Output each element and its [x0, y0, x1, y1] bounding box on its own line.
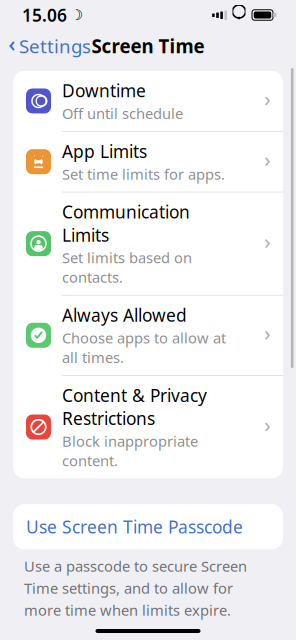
staticText: Set time limits for apps. — [62, 164, 225, 184]
button[interactable]: Settings — [0, 28, 99, 64]
button[interactable]: Content & Privacy Restrictions — [13, 376, 283, 478]
staticText: Block inappropriate content. — [62, 431, 198, 470]
button[interactable]: Downtime — [13, 71, 283, 132]
button[interactable]: Communication Limits — [13, 192, 283, 296]
staticText: Off until schedule — [62, 103, 183, 123]
staticText: Content & Privacy Restrictions — [62, 384, 207, 430]
button[interactable]: App Limits — [13, 132, 283, 192]
staticText: Settings — [19, 34, 91, 58]
staticText: ☽ — [70, 7, 83, 23]
button[interactable]: Always Allowed — [13, 296, 283, 376]
staticText: Always Allowed — [62, 304, 187, 327]
button[interactable]: Use Screen Time Passcode — [13, 504, 283, 549]
staticText: Screen Time — [91, 34, 204, 58]
staticText: App Limits — [62, 140, 147, 163]
staticText: Communication Limits — [62, 200, 190, 246]
staticText: Use a passcode to secure Screen Time set… — [24, 556, 247, 620]
staticText: 15.06 — [22, 3, 67, 26]
staticText: Set limits based on contacts. — [62, 248, 192, 287]
staticText: Downtime — [62, 79, 146, 102]
staticText: Choose apps to allow at all times. — [62, 328, 226, 367]
staticText: Use Screen Time Passcode — [26, 515, 243, 538]
